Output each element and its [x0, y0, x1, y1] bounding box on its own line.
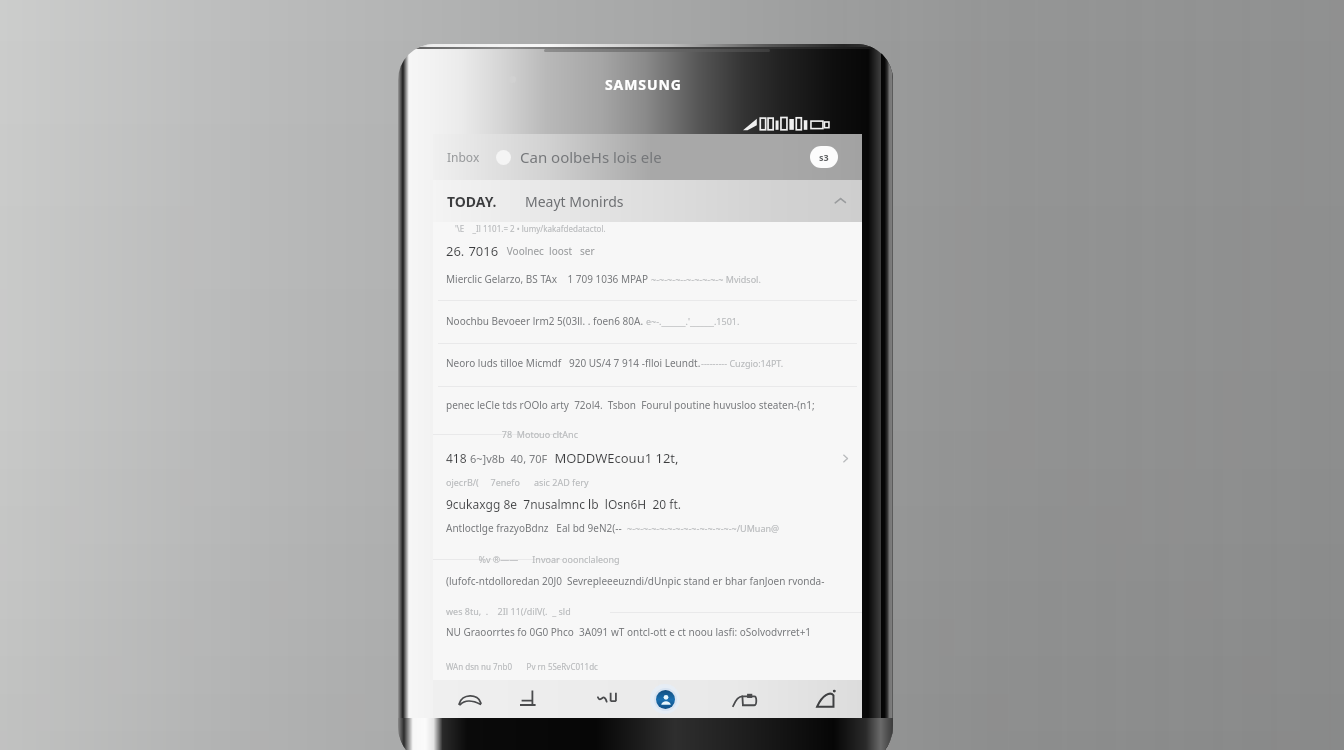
staticText: SAMSUNG — [605, 75, 682, 94]
staticText: (lufofc-ntdolloredan 20J0 Sevrepleeeuznd… — [446, 574, 825, 588]
staticText: Meayt Monirds — [525, 192, 624, 211]
staticText: e~-.______.'______.1501. — [646, 315, 740, 327]
staticText: '\E _Il 1101.= 2 • lumy/kakafdedatactol. — [455, 223, 606, 234]
staticText: 78 Motouo cltAnc — [455, 428, 578, 440]
staticText: 418 — [446, 450, 470, 466]
button[interactable]: 78 Motouo cltAnc — [433, 423, 862, 445]
staticText: 26. — [446, 242, 465, 260]
staticText: Antloctlge frazyoBdnz Eal bd 9eN2(-- — [446, 521, 627, 535]
button[interactable]: TODAY. — [433, 180, 862, 222]
staticText: 7016 — [465, 242, 499, 260]
button[interactable]: Inbox — [433, 134, 862, 180]
staticText: TODAY. — [447, 192, 497, 211]
staticText: Mierclic Gelarzo, BS TAx 1 709 1036 MPAP — [446, 272, 651, 286]
button[interactable]: Wallet — [718, 680, 772, 718]
button[interactable]: Messages — [581, 680, 635, 718]
staticText: %v ®—— Invoar ooonclaleong — [455, 553, 620, 565]
button[interactable]: Account — [810, 146, 838, 168]
button[interactable]: Account — [638, 680, 692, 718]
staticText: WAn dsn nu 7nb0 Pv rn 5SeRvC011dc — [446, 661, 598, 672]
button[interactable]: Lists — [501, 680, 555, 718]
button[interactable]: (lufofc-ntdolloredan 20J0 Sevrepleeeuznd… — [433, 570, 862, 592]
button[interactable]: Browse — [443, 680, 497, 718]
staticText: Can oolbeHs lois ele — [520, 147, 662, 167]
staticText: Neoro luds tilloe Micmdf 920 US/4 7 914 … — [446, 356, 701, 370]
staticText: wes 8tu, . 2Il 11(/dilV(. _ sld — [446, 605, 571, 617]
button[interactable]: Neoro luds tilloe Micmdf 920 US/4 7 914 … — [433, 352, 862, 374]
button[interactable]: %v ®—— Invoar ooonclaleong — [433, 548, 862, 570]
staticText: 9cukaxgg 8e 7nusalmnc — [446, 496, 585, 512]
button[interactable]: NU Graoorrtes fo 0G0 Phco 3A091 wT ontcl… — [433, 621, 862, 643]
staticText: Noochbu Bevoeer lrm2 5(03ll. . foen6 80A… — [446, 314, 646, 328]
staticText: Inbox — [447, 149, 480, 165]
staticText: penec leCle tds rOOlo arty 72ol4. Tsbon … — [446, 398, 815, 412]
button[interactable]: 418 — [433, 447, 862, 469]
staticText: Voolnec loost ser — [499, 244, 595, 258]
other: Collapse — [834, 195, 846, 207]
button[interactable]: Mierclic Gelarzo, BS TAx 1 709 1036 MPAP — [433, 268, 862, 290]
staticText: s3 — [819, 151, 829, 163]
button[interactable]: wes 8tu, . 2Il 11(/dilV(. _ sld — [433, 600, 862, 622]
staticText: --------- Cuzgio:14PT. — [701, 357, 784, 369]
staticText: ~-~-~-~-~-~-~-~-~-~-~-~-~-~/UMuan@ — [627, 522, 780, 534]
button[interactable]: Home — [798, 680, 852, 718]
button[interactable]: Antloctlge frazyoBdnz Eal bd 9eN2(-- — [433, 517, 862, 539]
staticText: 6~]v8b 40, 70F — [470, 451, 551, 466]
staticText: lb lOsn6H 20 ft. — [585, 496, 681, 512]
staticText: NU Graoorrtes fo 0G0 Phco 3A091 wT ontcl… — [446, 625, 812, 639]
button[interactable]: 26. — [433, 240, 862, 262]
button[interactable]: '\E _Il 1101.= 2 • lumy/kakafdedatactol. — [433, 217, 862, 239]
button[interactable]: ojecrB/( 7enefo asic 2AD fery — [433, 471, 862, 493]
button[interactable]: penec leCle tds rOOlo arty 72ol4. Tsbon … — [433, 394, 862, 416]
button[interactable]: WAn dsn nu 7nb0 Pv rn 5SeRvC011dc — [433, 655, 862, 677]
button[interactable]: Noochbu Bevoeer lrm2 5(03ll. . foen6 80A… — [433, 310, 862, 332]
staticText: ~-~-~-~--~-~-~-~-~ Mvidsol. — [651, 273, 761, 285]
staticText: ojecrB/( 7enefo asic 2AD fery — [446, 476, 589, 488]
button[interactable]: 9cukaxgg 8e 7nusalmnc — [433, 493, 862, 515]
staticText: MODDWEcouu1 12t, — [551, 449, 679, 467]
